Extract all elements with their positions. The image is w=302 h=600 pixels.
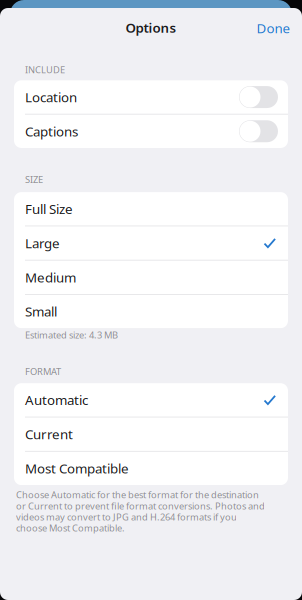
button[interactable]: Current [14, 417, 288, 451]
staticText: Full Size [25, 200, 73, 218]
staticText: Automatic [25, 391, 88, 409]
staticText: Most Compatible [25, 459, 129, 477]
staticText: Estimated size: 4.3 MB [25, 329, 118, 341]
staticText: Large [25, 234, 60, 252]
staticText: Medium [25, 268, 76, 286]
staticText: Small [25, 303, 57, 320]
button[interactable]: Most Compatible [14, 452, 288, 485]
button[interactable]: Captions [14, 114, 288, 148]
staticText: Choose Automatic for the best format for… [16, 488, 265, 534]
button[interactable]: Automatic [14, 383, 288, 417]
button[interactable]: Full Size [14, 192, 288, 226]
staticText: Location [25, 88, 77, 106]
staticText: FORMAT [25, 365, 61, 377]
button[interactable]: Location [14, 80, 288, 114]
staticText: INCLUDE [25, 63, 65, 76]
button[interactable]: Done [244, 10, 302, 44]
staticText: Done [256, 19, 290, 37]
staticText: SIZE [25, 173, 43, 186]
button[interactable]: Medium [14, 260, 288, 294]
staticText: Captions [25, 122, 78, 140]
button[interactable]: Small [14, 295, 288, 328]
button[interactable]: Large [14, 226, 288, 260]
staticText: Options [125, 19, 176, 36]
staticText: Current [25, 425, 73, 443]
